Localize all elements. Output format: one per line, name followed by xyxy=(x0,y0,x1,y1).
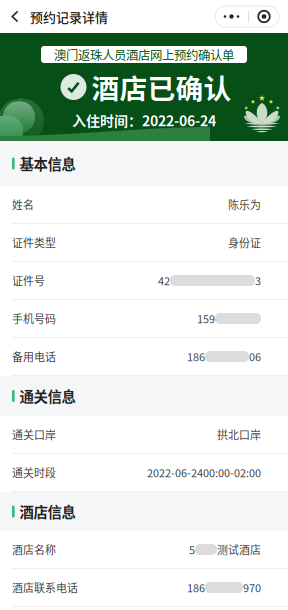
staticText: 手机号码 xyxy=(12,311,56,326)
staticText: 159 xyxy=(197,311,215,326)
staticText: 42 xyxy=(158,273,170,288)
staticText: 拱北口岸 xyxy=(217,427,261,442)
staticText: 通关时段 xyxy=(12,465,56,480)
staticText: 基本信息 xyxy=(20,153,76,174)
staticText: 测试酒店 xyxy=(217,542,261,557)
staticText: 预约记录详情 xyxy=(30,7,108,26)
staticText: 酒店联系电话 xyxy=(12,580,78,595)
staticText: 2022-06-2400:00-02:00 xyxy=(147,465,261,480)
button[interactable]: Close xyxy=(249,6,279,27)
staticText: 酒店信息 xyxy=(20,501,76,522)
staticText: 陈乐为 xyxy=(228,197,261,212)
staticText: 186 xyxy=(187,580,205,595)
staticText: 3 xyxy=(255,273,261,288)
staticText: 入住时间：2022-06-24 xyxy=(72,110,216,130)
staticText: 酒店名称 xyxy=(12,542,56,557)
staticText: 身份证 xyxy=(228,235,261,250)
staticText: 备用电话 xyxy=(12,349,56,364)
staticText: 证件类型 xyxy=(12,235,56,250)
button[interactable]: Back xyxy=(0,0,30,33)
staticText: 通关信息 xyxy=(20,386,76,406)
staticText: 186 xyxy=(187,349,205,364)
staticText: 970 xyxy=(243,580,261,595)
staticText: 06 xyxy=(249,349,261,364)
staticText: 证件号 xyxy=(12,273,45,288)
staticText: 澳门返珠人员酒店网上预约确认单 xyxy=(54,45,234,63)
button[interactable]: More xyxy=(215,6,248,27)
staticText: 姓名 xyxy=(12,197,34,212)
staticText: 通关口岸 xyxy=(12,427,56,442)
staticText: 酒店已确认 xyxy=(91,67,231,107)
staticText: 5 xyxy=(189,542,195,557)
